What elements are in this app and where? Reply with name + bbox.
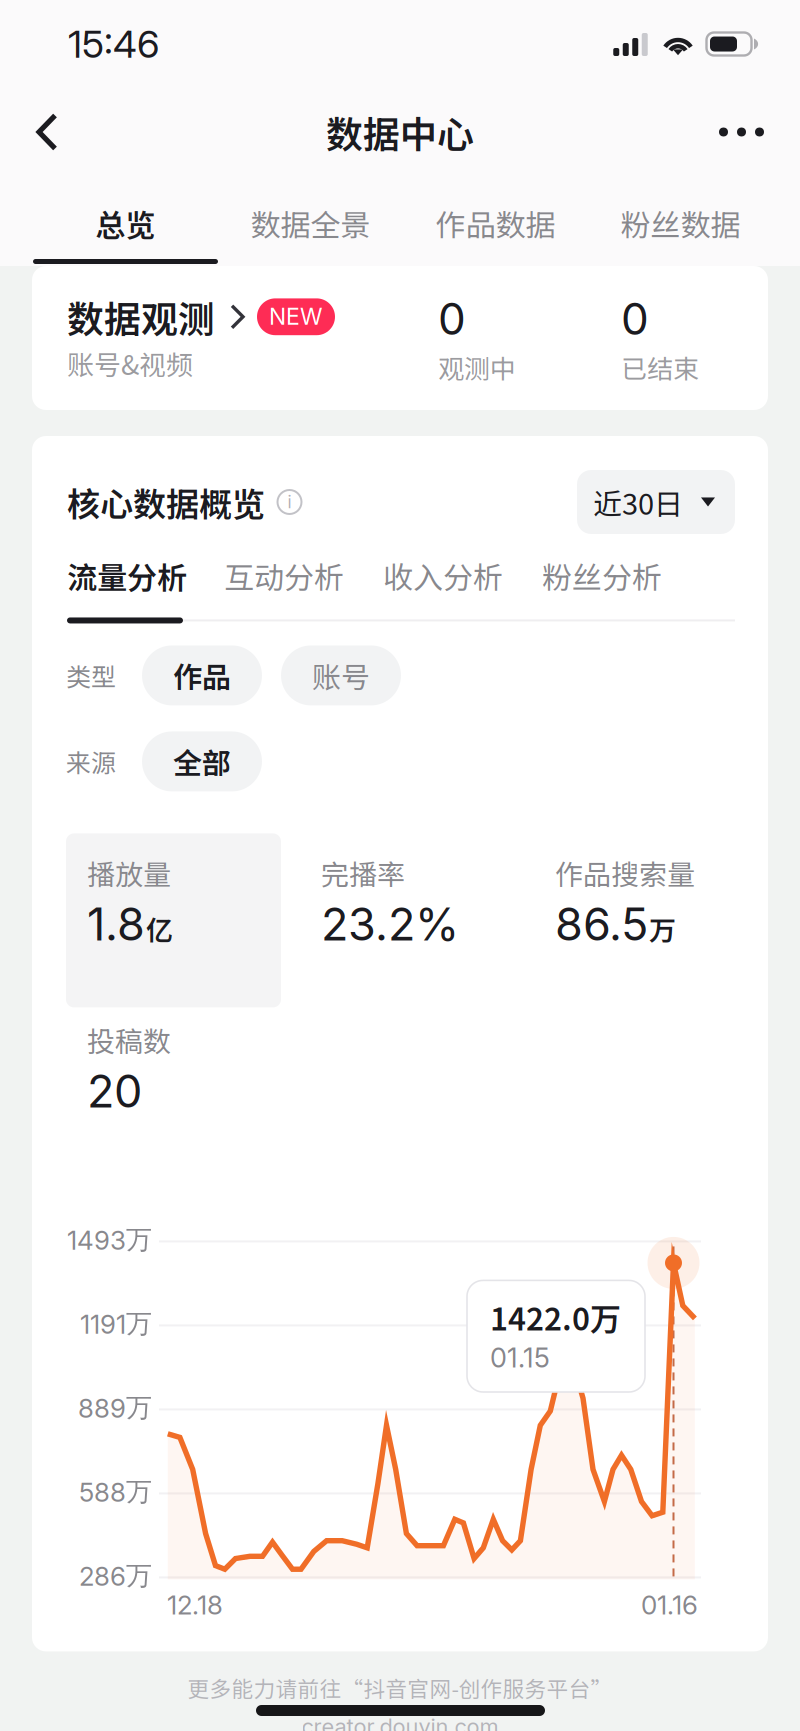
staticText: 来源	[66, 743, 116, 779]
staticText: 观测中	[438, 348, 516, 386]
staticText: 数据全景	[250, 202, 370, 245]
button[interactable]: 近30日	[577, 470, 735, 534]
staticText: 全部	[173, 740, 231, 782]
button[interactable]: 总览	[33, 176, 218, 266]
button[interactable]: 作品	[142, 645, 262, 705]
staticText: 总览	[95, 202, 155, 245]
button[interactable]: 账号	[281, 645, 401, 705]
staticText: 类型	[66, 657, 116, 693]
staticText: 86.5	[555, 897, 648, 951]
button[interactable]: 数据观测	[32, 266, 768, 410]
staticText: 1191万	[80, 1307, 152, 1340]
staticText: 完播率	[321, 852, 405, 893]
staticText: 核心数据概览	[67, 478, 265, 526]
button[interactable]: 作品数据	[403, 176, 588, 266]
staticText: 万	[649, 909, 676, 948]
staticText: 数据观测	[67, 290, 215, 344]
staticText: 1422.0万	[490, 1294, 621, 1339]
staticText: 15:46	[68, 21, 159, 67]
staticText: i	[287, 492, 291, 512]
button[interactable]: 全部	[142, 731, 262, 791]
button[interactable]: 数据全景	[218, 176, 403, 266]
staticText: 粉丝数据	[620, 202, 740, 245]
button[interactable]: More options	[697, 100, 786, 163]
staticText: 1493万	[67, 1223, 152, 1256]
staticText: 数据中心	[326, 105, 474, 159]
button[interactable]: Back	[14, 90, 80, 173]
staticText: 账号	[312, 654, 370, 696]
staticText: 作品	[173, 654, 231, 696]
staticText: 23.2%	[321, 897, 459, 951]
staticText: 作品数据	[435, 202, 555, 245]
staticText: 889万	[78, 1391, 152, 1424]
button[interactable]: 流量分析	[67, 554, 187, 597]
staticText: 已结束	[621, 348, 699, 386]
staticText: 0	[438, 292, 466, 345]
staticText: 更多能力请前往“抖音官网-创作服务平台”	[187, 1672, 612, 1703]
button[interactable]: 收入分析	[383, 554, 503, 597]
staticText: 投稿数	[87, 1019, 171, 1060]
staticText: 粉丝分析	[542, 554, 662, 597]
staticText: 账号&视频	[67, 344, 193, 383]
staticText: 1.8	[87, 897, 145, 951]
staticText: 0	[621, 292, 649, 345]
staticText: 286万	[79, 1559, 152, 1592]
staticText: 流量分析	[67, 554, 187, 597]
staticText: NEW	[269, 302, 323, 330]
staticText: 亿	[146, 909, 173, 948]
staticText: 近30日	[593, 481, 683, 523]
button[interactable]: 互动分析	[224, 554, 344, 597]
staticText: creator.douyin.com	[301, 1713, 498, 1731]
staticText: 588万	[79, 1475, 152, 1508]
staticText: 01.15	[490, 1341, 550, 1374]
button[interactable]: 粉丝分析	[542, 554, 662, 597]
staticText: 互动分析	[224, 554, 344, 597]
staticText: 12.18	[167, 1589, 223, 1621]
staticText: 收入分析	[383, 554, 503, 597]
staticText: 01.16	[641, 1589, 698, 1621]
staticText: 作品搜索量	[555, 852, 695, 893]
button[interactable]: 粉丝数据	[588, 176, 773, 266]
staticText: 播放量	[87, 852, 171, 893]
staticText: 20	[87, 1064, 142, 1118]
